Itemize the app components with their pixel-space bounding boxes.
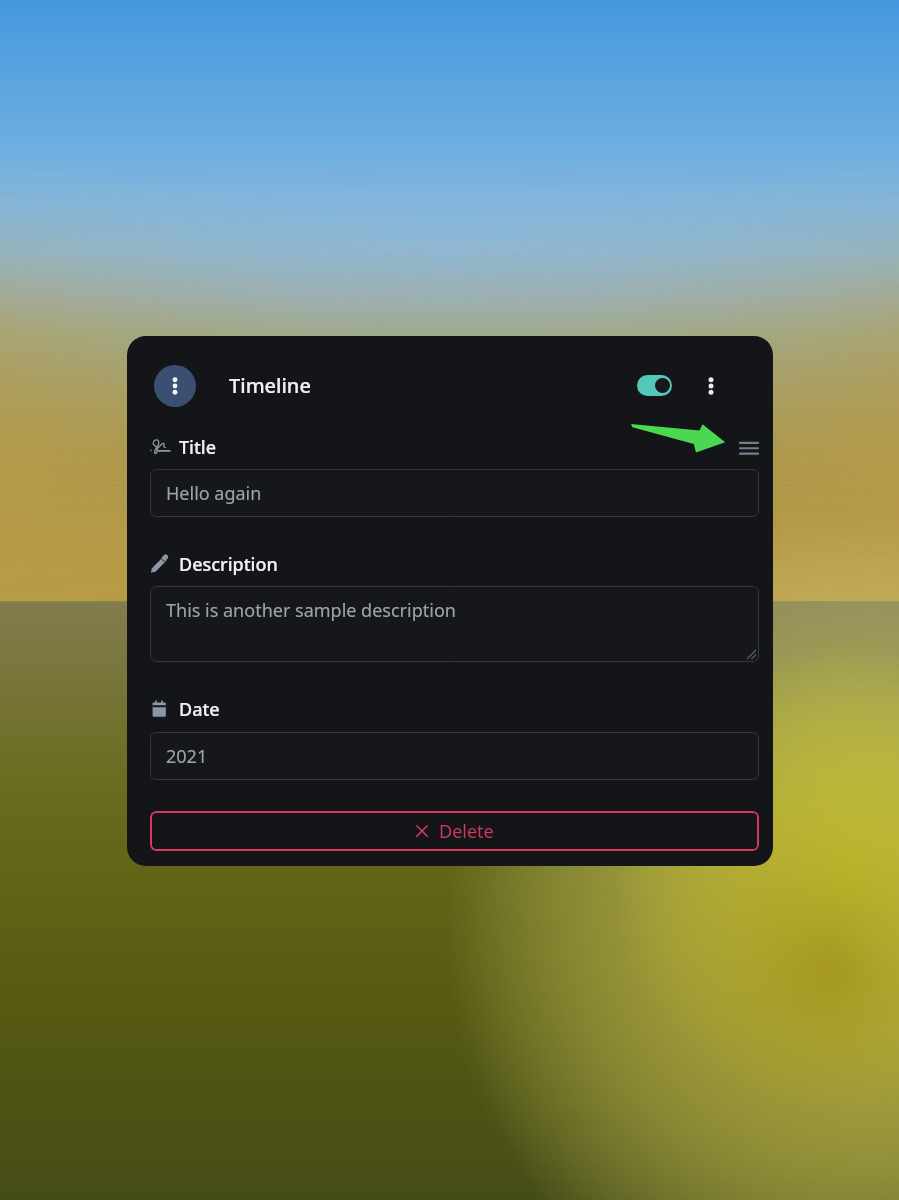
staticText: 2021 (166, 744, 208, 769)
staticText: Delete (439, 819, 494, 844)
button[interactable]: Menu (735, 434, 762, 461)
staticText: Date (179, 697, 220, 722)
button[interactable]: More options (696, 371, 726, 401)
staticText: This is another sample description (166, 598, 456, 623)
button[interactable]: Account (154, 365, 196, 407)
button[interactable]: Hello again (150, 469, 759, 517)
staticText: Title (179, 435, 217, 460)
staticText: Timeline (229, 372, 311, 399)
button[interactable]: Toggle visibility (637, 375, 672, 396)
button[interactable]: Delete (150, 811, 759, 851)
button[interactable]: 2021 (150, 732, 759, 780)
staticText: Hello again (166, 481, 262, 506)
staticText: Description (179, 552, 278, 577)
button[interactable]: This is another sample description (150, 586, 759, 662)
